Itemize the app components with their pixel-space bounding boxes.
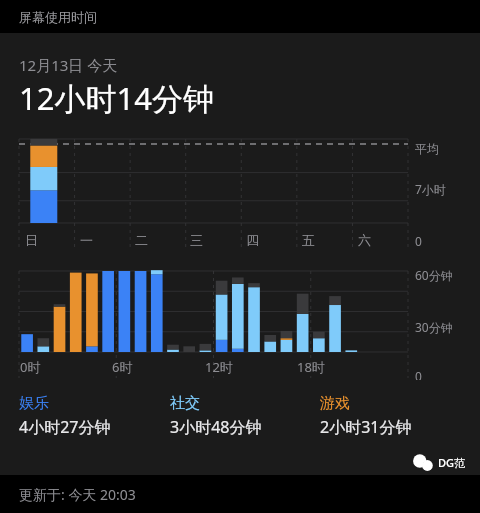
other: WeChat xyxy=(413,455,433,470)
staticText: 二 xyxy=(135,232,148,248)
staticText: 3小时48分钟 xyxy=(170,416,262,438)
button[interactable]: 日 xyxy=(0,133,480,253)
staticText: DG范 xyxy=(438,455,466,470)
button[interactable]: 游戏 xyxy=(320,394,470,438)
staticText: 更新于: 今天 20:03 xyxy=(19,485,136,504)
staticText: 日 xyxy=(25,232,38,248)
button[interactable]: 屏幕使用时间 xyxy=(0,0,480,33)
staticText: 四 xyxy=(246,232,259,248)
staticText: 12小时14分钟 xyxy=(19,77,214,119)
staticText: 60分钟 xyxy=(415,267,453,283)
staticText: 0 xyxy=(415,233,422,249)
staticText: 五 xyxy=(302,232,315,248)
staticText: 4小时27分钟 xyxy=(19,416,111,438)
staticText: 屏幕使用时间 xyxy=(19,9,97,25)
button[interactable]: 0时 xyxy=(0,265,480,380)
staticText: 社交 xyxy=(170,394,200,413)
staticText: 6时 xyxy=(112,358,133,376)
button[interactable]: 娱乐 xyxy=(19,394,170,438)
staticText: 0时 xyxy=(20,358,41,376)
staticText: 7小时 xyxy=(415,181,446,197)
button[interactable]: 更新于: 今天 20:03 xyxy=(0,475,480,513)
staticText: 三 xyxy=(190,232,203,248)
staticText: 娱乐 xyxy=(19,394,49,413)
staticText: 2小时31分钟 xyxy=(320,416,412,438)
staticText: 30分钟 xyxy=(415,319,453,335)
staticText: 一 xyxy=(80,232,93,248)
staticText: 六 xyxy=(358,232,371,248)
staticText: 12月13日 今天 xyxy=(19,55,118,75)
staticText: 游戏 xyxy=(320,394,350,413)
staticText: 18时 xyxy=(297,358,325,376)
button[interactable]: 社交 xyxy=(170,394,320,438)
staticText: 平均 xyxy=(415,141,439,156)
staticText: 12时 xyxy=(205,358,233,376)
staticText: 0 xyxy=(415,368,422,380)
